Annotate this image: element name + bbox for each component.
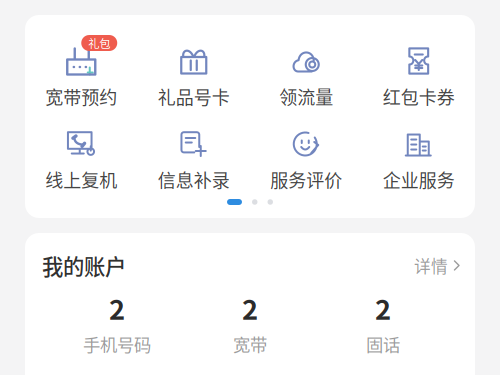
staticText: 信息补录	[158, 166, 230, 193]
button[interactable]: 2	[50, 293, 183, 355]
button[interactable]: 礼品号卡	[137, 46, 250, 109]
staticText: 固话	[366, 331, 400, 356]
staticText: 服务评价	[270, 166, 342, 193]
button[interactable]: 服务评价	[250, 129, 362, 192]
button[interactable]: 企业服务	[362, 129, 475, 192]
staticText: 领流量	[279, 83, 333, 110]
button[interactable]: 红包卡券	[362, 46, 475, 109]
staticText: 详情	[414, 253, 448, 277]
staticText: 红包卡券	[383, 83, 455, 110]
button[interactable]: 详情	[414, 253, 461, 277]
button[interactable]: 领流量	[250, 46, 362, 109]
staticText: 手机号码	[83, 331, 151, 356]
staticText: 线上复机	[45, 166, 117, 193]
button[interactable]: 2	[183, 293, 316, 355]
staticText: 宽带预约	[45, 83, 117, 110]
button[interactable]: 礼包	[25, 46, 137, 109]
staticText: 2	[242, 288, 258, 328]
button[interactable]: 线上复机	[25, 129, 137, 192]
staticText: 礼品号卡	[158, 83, 230, 110]
staticText: 2	[375, 288, 391, 328]
button[interactable]: 2	[316, 293, 449, 355]
staticText: 我的账户	[42, 250, 126, 281]
staticText: 2	[109, 288, 125, 328]
button[interactable]: 信息补录	[137, 129, 250, 192]
staticText: 宽带	[233, 331, 267, 356]
staticText: 企业服务	[383, 166, 455, 193]
staticText: 礼包	[88, 35, 110, 51]
